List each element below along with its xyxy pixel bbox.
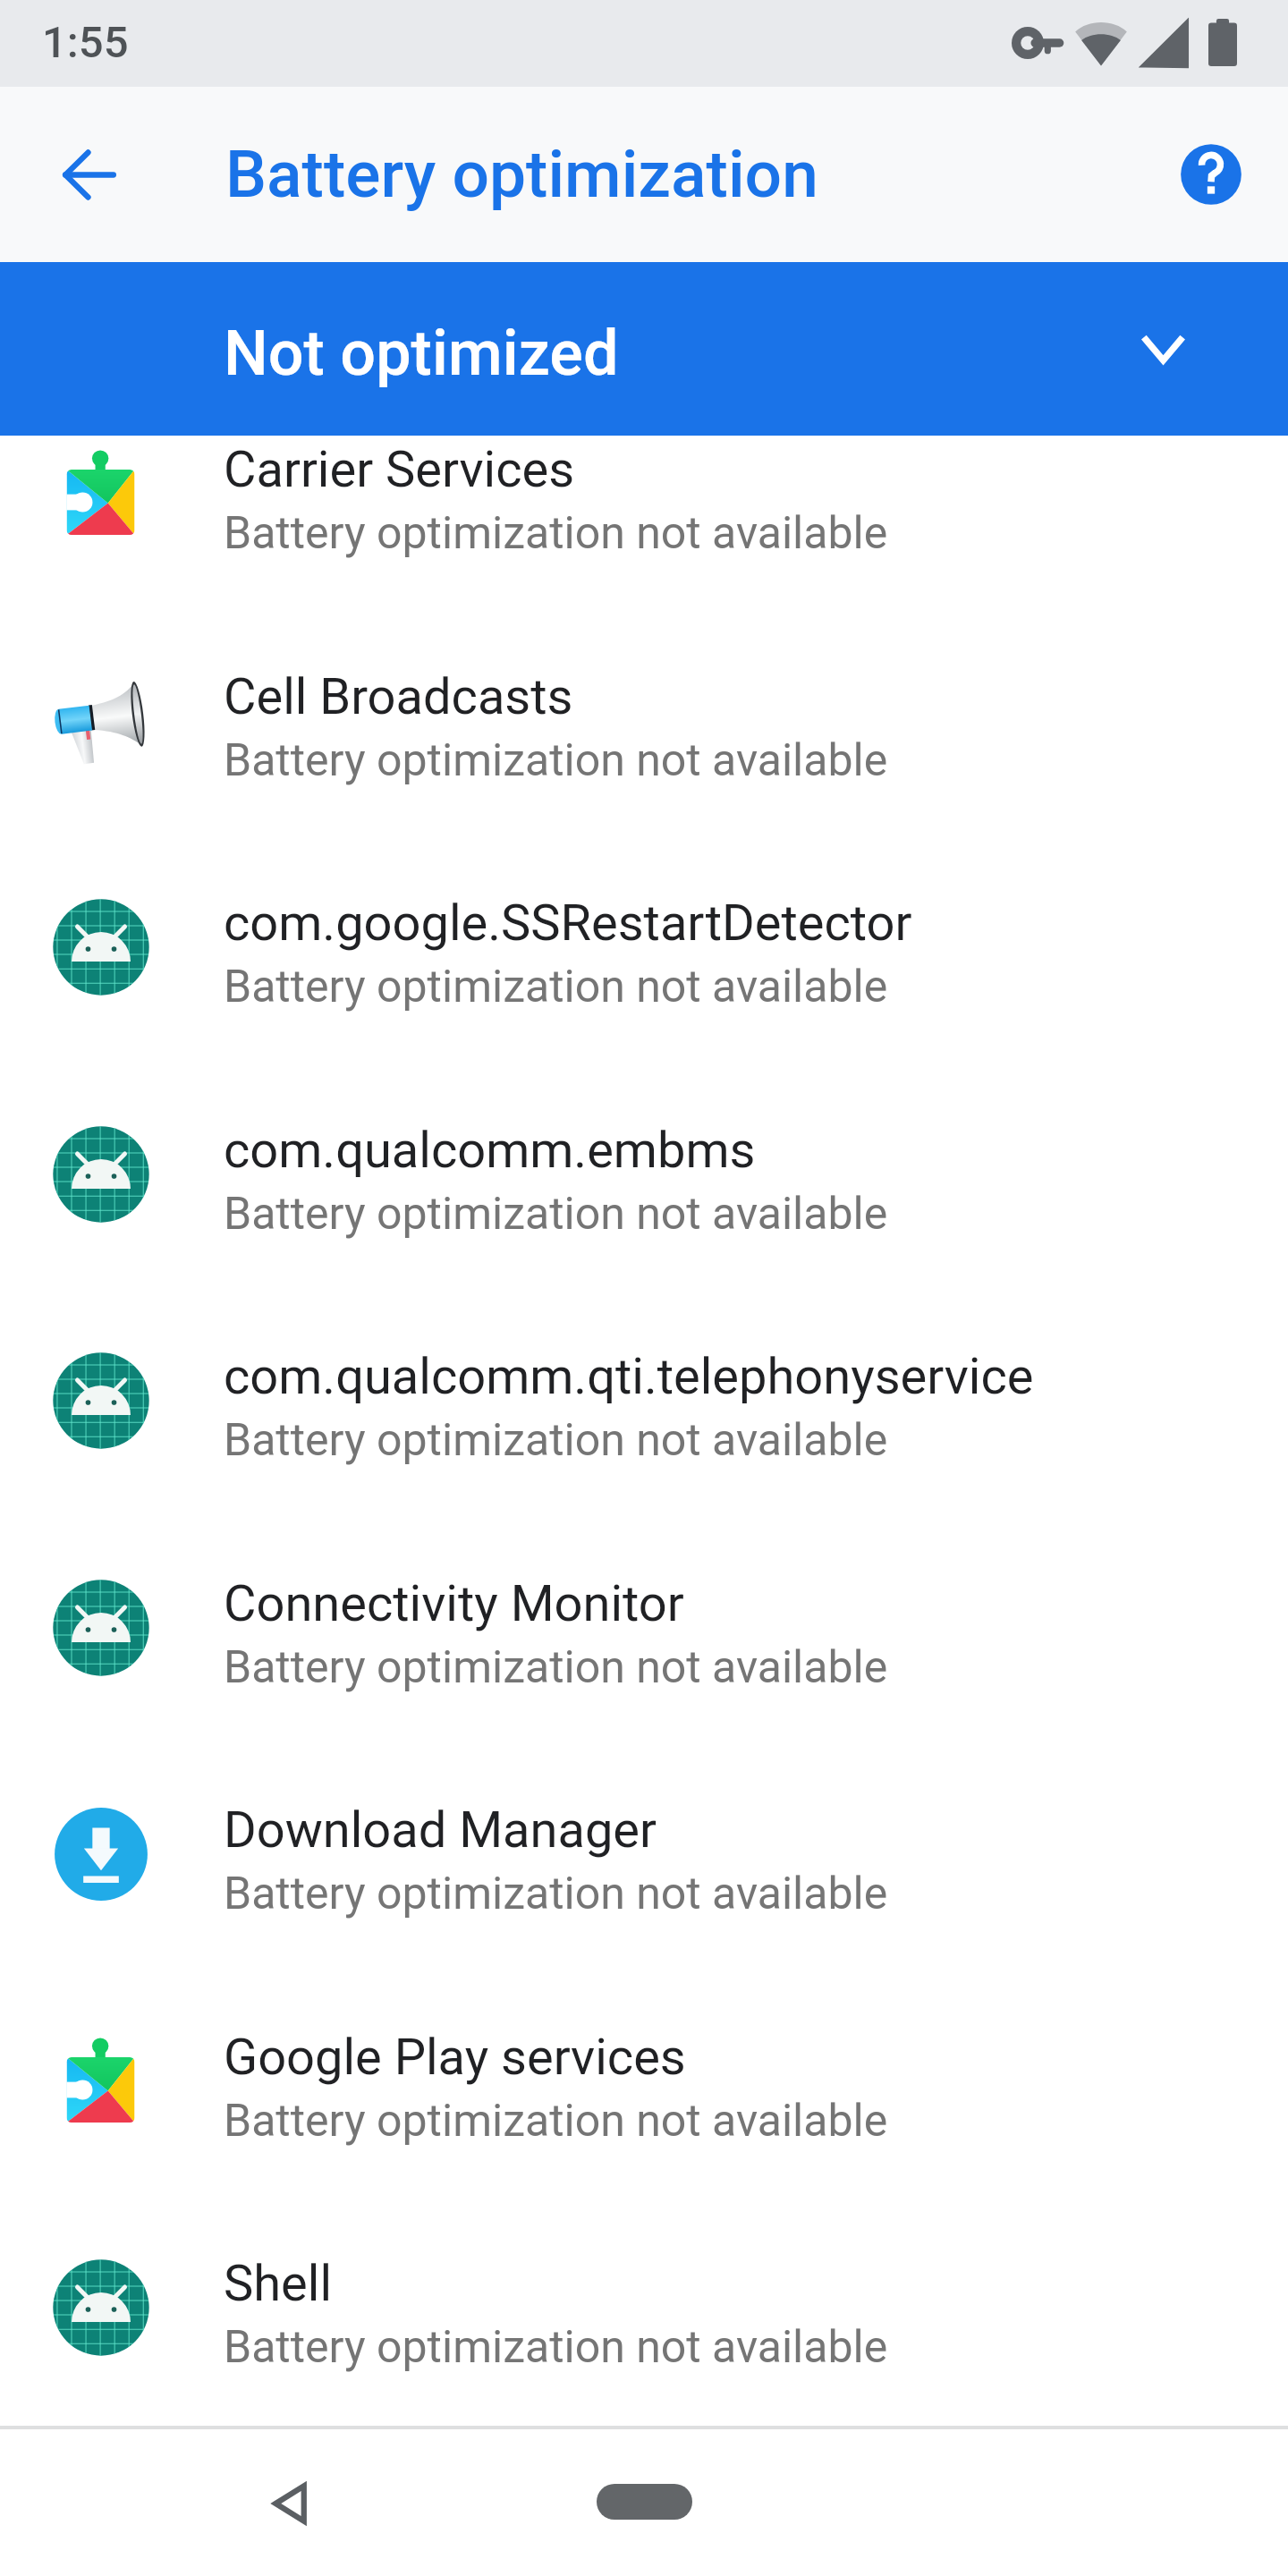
button[interactable]: com.qualcomm.embms xyxy=(0,1081,1288,1309)
staticText: Battery optimization not available xyxy=(224,961,888,1013)
staticText: Cell Broadcasts xyxy=(224,667,573,726)
staticText: Connectivity Monitor xyxy=(224,1574,684,1633)
button[interactable]: Navigate up xyxy=(44,130,134,220)
button[interactable]: Cell Broadcasts xyxy=(0,628,1288,855)
staticText: Shell xyxy=(224,2254,333,2313)
button[interactable]: Shell xyxy=(0,2215,1288,2442)
staticText: Battery optimization not available xyxy=(224,2321,888,2374)
button[interactable]: com.qualcomm.qti.telephonyservice xyxy=(0,1308,1288,1535)
button[interactable]: Home xyxy=(563,2439,724,2564)
button[interactable]: Connectivity Monitor xyxy=(0,1535,1288,1762)
button[interactable]: Google Play services xyxy=(0,1988,1288,2216)
staticText: Google Play services xyxy=(224,2028,686,2087)
staticText: Battery optimization not available xyxy=(224,507,888,560)
button[interactable]: Not optimized xyxy=(0,262,1288,436)
button[interactable]: Back xyxy=(227,2441,352,2566)
staticText: Battery optimization not available xyxy=(224,734,888,787)
button[interactable]: Help xyxy=(1163,126,1259,223)
staticText: Carrier Services xyxy=(224,440,575,499)
staticText: Battery optimization not available xyxy=(224,1868,888,1920)
button[interactable]: Download Manager xyxy=(0,1761,1288,1988)
staticText: Not optimized xyxy=(224,317,619,390)
staticText: Battery optimization xyxy=(225,136,818,213)
staticText: com.google.SSRestartDetector xyxy=(224,894,912,953)
staticText: 1:55 xyxy=(42,17,129,68)
staticText: com.qualcomm.qti.telephonyservice xyxy=(224,1347,1034,1406)
staticText: com.qualcomm.embms xyxy=(224,1121,756,1180)
staticText: Battery optimization not available xyxy=(224,1188,888,1241)
staticText: Battery optimization not available xyxy=(224,1641,888,1694)
button[interactable]: com.google.SSRestartDetector xyxy=(0,854,1288,1081)
staticText: Download Manager xyxy=(224,1801,657,1860)
staticText: Battery optimization not available xyxy=(224,2095,888,2148)
button[interactable]: Carrier Services xyxy=(0,401,1288,628)
staticText: Battery optimization not available xyxy=(224,1414,888,1467)
